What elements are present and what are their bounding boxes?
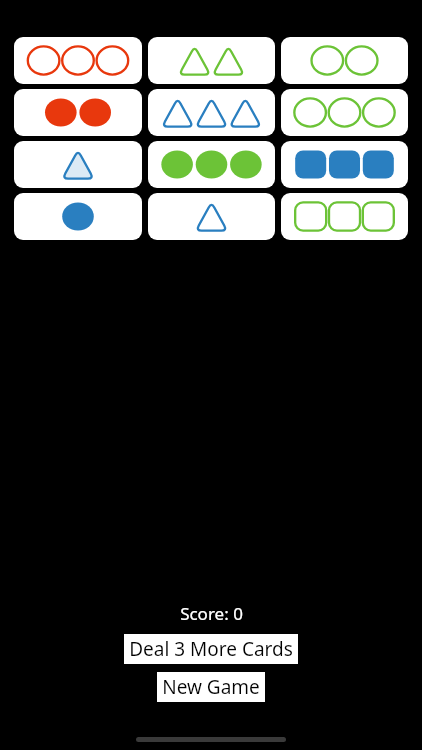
button[interactable]: Card (281, 37, 408, 84)
button[interactable]: Deal 3 More Cards (124, 634, 298, 664)
button[interactable]: Card (14, 89, 142, 136)
staticText: New Game (162, 674, 260, 700)
button[interactable]: Card (148, 89, 275, 136)
button[interactable]: New Game (157, 672, 265, 702)
button[interactable]: Card (281, 141, 408, 188)
button[interactable]: Card (148, 193, 275, 240)
button[interactable]: Card (148, 37, 275, 84)
button[interactable]: Card (14, 193, 142, 240)
button[interactable]: Card (281, 193, 408, 240)
button[interactable]: Card (148, 141, 275, 188)
button[interactable]: Card (14, 141, 142, 188)
button[interactable]: Card (14, 37, 142, 84)
staticText: Deal 3 More Cards (129, 636, 293, 662)
staticText: Score: 0 (180, 602, 243, 625)
button[interactable]: Card (281, 89, 408, 136)
